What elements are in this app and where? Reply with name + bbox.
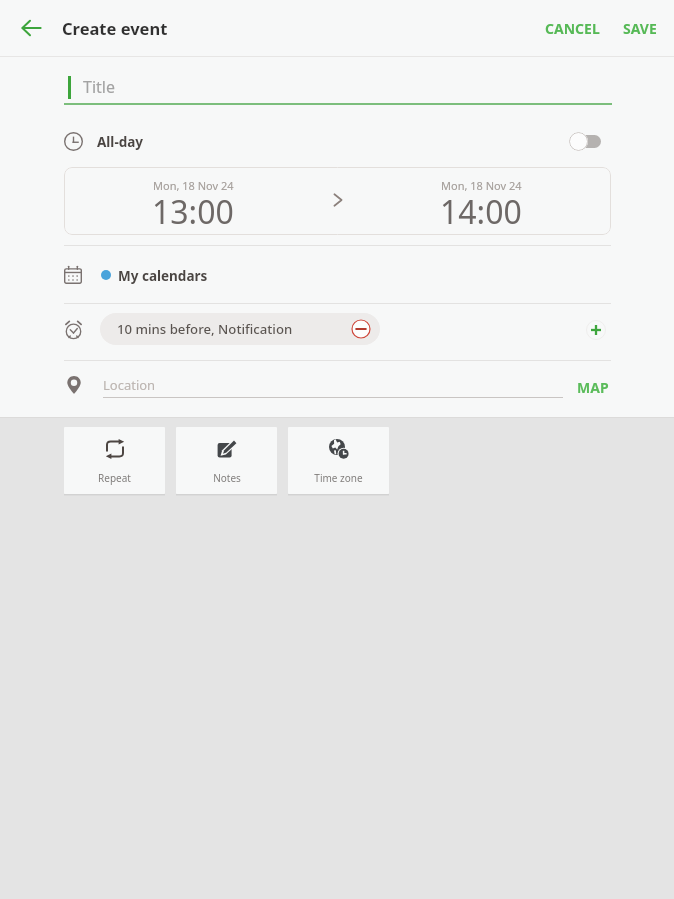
staticText: All-day xyxy=(97,133,144,151)
staticText: 13:00 xyxy=(152,190,234,234)
button[interactable]: Location xyxy=(103,367,563,403)
staticText: Location xyxy=(103,376,156,394)
staticText: Create event xyxy=(62,17,168,39)
staticText: Notes xyxy=(213,471,241,485)
button[interactable]: Time zone xyxy=(288,427,389,494)
button[interactable]: My calendars xyxy=(0,250,674,302)
button[interactable]: Remove notification xyxy=(351,319,371,339)
staticText: Repeat xyxy=(98,471,131,485)
button[interactable]: Mon, 18 Nov 24 xyxy=(64,167,611,235)
staticText: CANCEL xyxy=(545,19,600,38)
button[interactable]: All-day xyxy=(0,118,674,166)
button[interactable]: MAP xyxy=(568,372,618,403)
staticText: Title xyxy=(83,76,115,98)
button[interactable]: Add notification xyxy=(583,317,609,343)
staticText: Time zone xyxy=(314,471,363,485)
staticText: Mon, 18 Nov 24 xyxy=(153,178,234,193)
staticText: 10 mins before, Notification xyxy=(117,320,293,338)
button[interactable]: Back xyxy=(9,6,53,50)
staticText: My calendars xyxy=(118,267,208,285)
staticText: SAVE xyxy=(623,19,657,38)
button[interactable]: CANCEL xyxy=(534,9,611,48)
staticText: MAP xyxy=(577,378,609,397)
staticText: 14:00 xyxy=(440,190,522,234)
staticText: Mon, 18 Nov 24 xyxy=(441,178,522,193)
button[interactable]: 10 mins before, Notification xyxy=(100,313,380,345)
button[interactable]: Repeat xyxy=(64,427,165,494)
button[interactable]: SAVE xyxy=(612,9,668,48)
button[interactable]: Notes xyxy=(176,427,277,494)
